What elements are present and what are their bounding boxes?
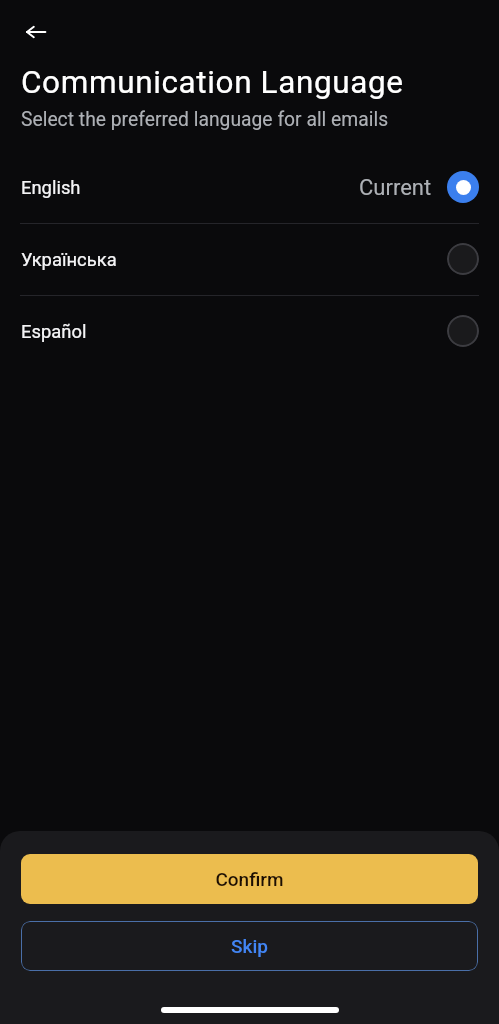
staticText: Current <box>359 175 432 201</box>
staticText: Español <box>21 321 87 343</box>
button[interactable]: English <box>0 152 499 223</box>
staticText: Select the preferred language for all em… <box>21 108 389 131</box>
button[interactable]: Confirm <box>21 854 478 904</box>
button[interactable]: Skip <box>21 921 478 971</box>
staticText: Skip <box>231 935 268 957</box>
staticText: English <box>21 177 81 199</box>
staticText: Українська <box>21 249 117 271</box>
button[interactable]: Back <box>16 12 56 52</box>
button[interactable]: Español <box>0 296 499 367</box>
staticText: Confirm <box>215 868 284 890</box>
button[interactable]: Українська <box>0 224 499 295</box>
staticText: Communication Language <box>21 64 404 101</box>
